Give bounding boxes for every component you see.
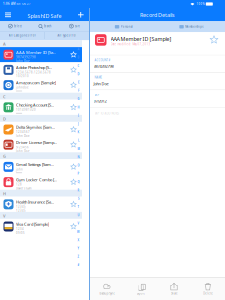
staticText: David's Gym	[16, 187, 31, 190]
staticText: I	[78, 114, 79, 117]
staticText: ACCOUNT #	[94, 58, 110, 62]
staticText: W	[77, 230, 80, 234]
staticText: K	[77, 130, 79, 134]
staticText: Driver License [Samp…	[16, 140, 57, 145]
button[interactable]: AAA Member ID [Sa…	[0, 47, 82, 62]
staticText: 1234567	[16, 130, 30, 134]
staticText: E	[78, 81, 79, 84]
staticText: Share	[171, 292, 178, 295]
button[interactable]: Export	[124, 280, 158, 298]
button[interactable]: Favourite	[208, 34, 220, 46]
button[interactable]: Health Insurance [Sa…	[0, 197, 82, 212]
staticText: A	[3, 41, 6, 47]
staticText: X	[77, 238, 79, 242]
staticText: Health Insurance [Sa…	[16, 199, 54, 205]
button[interactable]: Driver License [Samp…	[0, 137, 82, 152]
button[interactable]: Favourite	[69, 141, 77, 149]
button[interactable]: Favourite	[69, 200, 77, 208]
staticText: 12345	[16, 209, 26, 212]
button[interactable]: Favourite	[69, 103, 77, 111]
staticText: Q	[77, 180, 79, 184]
staticText: Record Details	[140, 11, 175, 19]
button[interactable]: Amazon.com [Sample]	[0, 77, 82, 93]
staticText: Gmail Settings [Sam…	[16, 162, 54, 167]
button[interactable]: Personal	[90, 21, 157, 32]
staticText: John Doe	[93, 81, 108, 86]
button[interactable]: Search	[30, 21, 60, 31]
staticText: Adobe Photoshop [S…	[16, 65, 52, 70]
staticText: John Doe	[16, 134, 30, 138]
button[interactable]: All Types (10)	[45, 31, 89, 40]
staticText: F	[78, 89, 79, 92]
button[interactable]: All Categories (10)	[0, 31, 44, 40]
staticText: V	[77, 222, 79, 225]
staticText: C	[77, 64, 79, 68]
staticText: 07/2012	[93, 98, 106, 104]
staticText: AAA Member ID [Sample]	[110, 35, 171, 42]
staticText: G	[77, 97, 79, 101]
staticText: Checking Account [S…	[16, 102, 54, 108]
staticText: All Types (10)	[57, 34, 76, 37]
button[interactable]: Favourite	[69, 66, 77, 74]
button[interactable]: Visa Card [Sample]	[0, 219, 82, 234]
staticText: Select	[14, 24, 22, 28]
staticText: TAP TO ADD NOTES	[94, 112, 118, 115]
button[interactable]: Checking Account [S…	[0, 100, 82, 115]
staticText: Delta Skymiles [Sam…	[16, 124, 55, 130]
button[interactable]: Share	[158, 280, 191, 298]
staticText: D	[77, 72, 79, 76]
button[interactable]: Delete	[191, 280, 225, 298]
staticText: johndoe	[16, 86, 29, 89]
staticText: 1:06 AM	[3, 2, 15, 5]
staticText: 3874392798	[93, 64, 113, 69]
staticText: 3874392798	[16, 55, 36, 59]
staticText: G	[3, 154, 6, 159]
staticText: EXP	[94, 93, 99, 97]
staticText: John Doe	[16, 59, 30, 63]
staticText: Z	[77, 255, 79, 258]
staticText: J	[78, 122, 79, 126]
staticText: Delete	[203, 292, 213, 295]
staticText: H	[3, 191, 6, 196]
button[interactable]: Favourite	[69, 222, 77, 230]
button[interactable]: Adobe Photoshop [S…	[0, 62, 82, 77]
button[interactable]: Favourite	[69, 163, 77, 171]
button[interactable]: Select	[0, 21, 30, 31]
staticText: 100%	[196, 2, 204, 6]
staticText: D	[3, 116, 6, 121]
staticText: V	[3, 213, 6, 218]
staticText: ••••••	[16, 172, 22, 175]
staticText: Personal	[121, 25, 133, 28]
button[interactable]: Favourite	[69, 125, 77, 133]
button[interactable]: Favourite	[69, 178, 77, 186]
staticText: Visa Card [Sample]	[16, 221, 49, 227]
staticText: Amazon.com [Sample]	[16, 80, 56, 85]
staticText: M	[77, 147, 79, 151]
staticText: Memberships	[185, 25, 203, 28]
button[interactable]: Add	[75, 9, 87, 21]
button[interactable]: Index	[75, 45, 81, 269]
staticText: S123456	[16, 145, 29, 149]
staticText: Y	[77, 247, 79, 250]
staticText: 1234-5678-1234-5678	[16, 71, 51, 74]
staticText: All Categories (10)	[9, 34, 36, 37]
button[interactable]: Favourite	[69, 81, 77, 89]
staticText: Export	[137, 292, 145, 295]
button[interactable]: Favourite	[69, 51, 77, 59]
button[interactable]: Sort	[60, 21, 89, 31]
button[interactable]: Delta Skymiles [Sam…	[0, 122, 82, 137]
staticText: 10/2010	[16, 75, 29, 78]
button[interactable]: Menu	[2, 9, 14, 20]
staticText: SplashID Safe	[27, 12, 61, 19]
staticText: Sort	[75, 24, 80, 28]
button[interactable]: Gmail Settings [Sam…	[0, 159, 82, 174]
staticText: #	[77, 263, 79, 267]
button[interactable]: Gym Locker Combo […	[0, 174, 82, 190]
staticText: ••••••	[16, 112, 22, 115]
staticText: Backup/Sync	[99, 292, 114, 295]
button[interactable]: Memberships	[157, 21, 225, 32]
staticText: L	[78, 139, 79, 142]
staticText: Date modified: May 07,2013	[110, 42, 150, 46]
button[interactable]: Backup/Sync	[90, 280, 124, 298]
